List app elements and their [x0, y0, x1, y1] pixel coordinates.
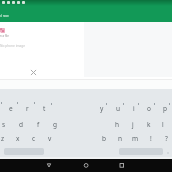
button[interactable] [118, 161, 126, 169]
staticText: No phone image [0, 44, 25, 48]
button[interactable]: d [14, 118, 28, 131]
staticText: p [163, 104, 167, 113]
button[interactable]: s [0, 118, 11, 131]
button[interactable]: i [127, 102, 141, 115]
button[interactable]: c [27, 132, 41, 145]
staticText: c [32, 134, 36, 143]
staticText: f [37, 120, 40, 129]
button[interactable]: g [48, 118, 62, 131]
button[interactable]: l [156, 118, 170, 131]
staticText: l [162, 120, 164, 129]
button[interactable] [45, 161, 53, 169]
staticText: y [100, 104, 104, 113]
button[interactable]: x [11, 132, 25, 145]
button[interactable]: d now [0, 6, 172, 22]
button[interactable]: j [126, 118, 140, 131]
staticText: z [1, 134, 5, 143]
staticText: ? [165, 134, 168, 143]
button[interactable] [30, 69, 37, 76]
staticText: s [2, 120, 6, 129]
staticText: e [9, 104, 13, 113]
staticText: n a file [0, 34, 9, 38]
staticText: i [133, 104, 135, 113]
staticText: u [116, 104, 121, 113]
staticText: g [53, 120, 57, 129]
button[interactable]: f [31, 118, 45, 131]
staticText: d [19, 120, 23, 129]
staticText: t [43, 104, 46, 113]
staticText: k [147, 120, 151, 129]
button[interactable]: t [37, 102, 51, 115]
button[interactable]: v [43, 132, 57, 145]
staticText: j [132, 120, 134, 129]
button[interactable]: m [128, 132, 142, 145]
button[interactable]: ? [159, 132, 172, 145]
staticText: b [102, 134, 106, 143]
button[interactable]: r [20, 102, 34, 115]
button[interactable]: o [142, 102, 156, 115]
button[interactable] [82, 161, 90, 169]
button[interactable]: p [158, 102, 172, 115]
button[interactable]: k [142, 118, 156, 131]
button[interactable]: ! [144, 132, 158, 145]
staticText: h [115, 120, 120, 129]
button[interactable] [0, 28, 5, 33]
button[interactable]: b [97, 132, 111, 145]
staticText: o [147, 104, 151, 113]
staticText: v [48, 134, 52, 143]
button[interactable]: u [111, 102, 125, 115]
button[interactable]: e [4, 102, 18, 115]
button[interactable]: h [110, 118, 124, 131]
button[interactable]: n [113, 132, 127, 145]
staticText: r [26, 104, 29, 113]
staticText: x [16, 134, 20, 143]
button[interactable]: z [0, 132, 10, 145]
staticText: d now [0, 14, 9, 18]
staticText: n [118, 134, 123, 143]
button[interactable]: y [95, 102, 109, 115]
staticText: m [132, 134, 139, 143]
staticText: ! [150, 134, 152, 143]
